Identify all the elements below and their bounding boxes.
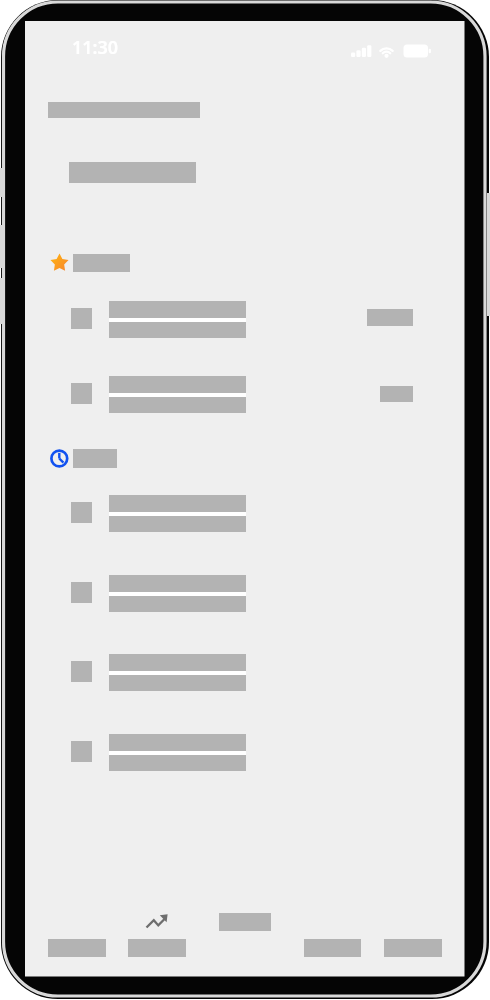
button[interactable] xyxy=(71,575,246,612)
button[interactable] xyxy=(219,908,271,935)
button[interactable] xyxy=(50,448,118,469)
staticText: 11:30 xyxy=(72,35,119,60)
button[interactable] xyxy=(71,376,413,413)
button[interactable] xyxy=(71,301,413,338)
button[interactable] xyxy=(71,734,246,771)
button[interactable] xyxy=(71,654,246,691)
button[interactable] xyxy=(304,935,361,961)
button[interactable] xyxy=(71,495,246,532)
button[interactable] xyxy=(384,935,442,961)
button[interactable] xyxy=(50,253,131,272)
button[interactable] xyxy=(128,908,186,961)
button[interactable] xyxy=(48,935,106,961)
